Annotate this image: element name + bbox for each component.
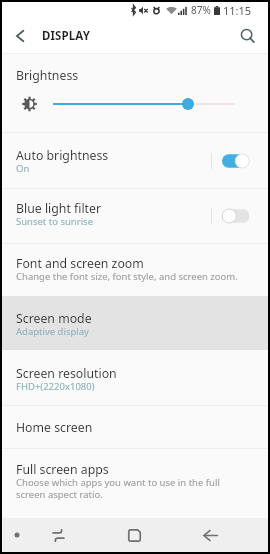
staticText: Change the font size, font style, and sc… (16, 270, 238, 283)
button[interactable]: Font and screen zoom (2, 244, 268, 296)
staticText: Full screen apps (16, 461, 109, 478)
staticText: 11:15 (223, 3, 252, 18)
button[interactable]: Home screen (2, 406, 268, 448)
button[interactable]: Screen mode (2, 296, 268, 350)
button[interactable]: Screen resolution (2, 350, 268, 405)
staticText: Choose which apps you want to use in the… (16, 476, 220, 501)
staticText: 87% (191, 3, 211, 17)
button[interactable]: Blue light filter (2, 189, 268, 243)
button[interactable]: Full screen apps (2, 449, 268, 518)
button[interactable]: Switch off (212, 189, 268, 243)
button[interactable]: Auto brightness (2, 133, 268, 188)
button[interactable]: Switch on (212, 133, 268, 188)
button[interactable]: Recent apps (42, 518, 74, 552)
staticText: Screen mode (16, 310, 92, 327)
button[interactable]: Search (232, 20, 264, 52)
staticText: Adaptive display (16, 325, 89, 338)
staticText: Font and screen zoom (16, 255, 144, 272)
staticText: Home screen (16, 419, 93, 436)
button[interactable]: Home (118, 518, 150, 552)
staticText: On (16, 162, 30, 175)
staticText: Auto brightness (16, 147, 109, 164)
staticText: Screen resolution (16, 365, 117, 382)
staticText: FHD+(2220x1080) (16, 380, 95, 393)
staticText: Blue light filter (16, 200, 102, 217)
button[interactable]: Menu (2, 518, 32, 552)
staticText: Sunset to sunrise (16, 215, 93, 228)
button[interactable]: Navigate up (2, 18, 37, 53)
staticText: Brightness (16, 67, 79, 84)
staticText: DISPLAY (42, 28, 90, 44)
button[interactable]: Back (194, 518, 226, 552)
